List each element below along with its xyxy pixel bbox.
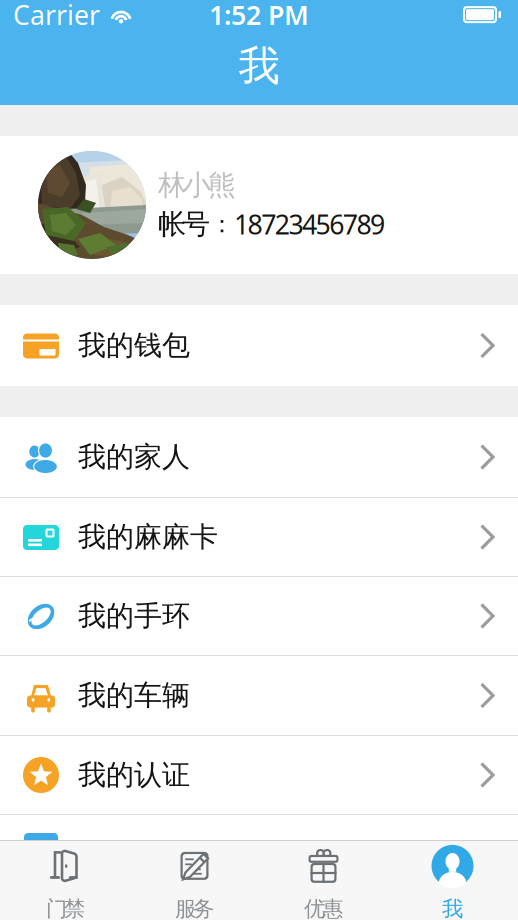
staticText: 优惠 bbox=[304, 896, 343, 920]
staticText: 我 bbox=[442, 896, 463, 920]
staticText: 门禁 bbox=[46, 896, 85, 920]
staticText: 我的车辆 bbox=[78, 678, 190, 713]
button[interactable]: 我的车辆 bbox=[0, 656, 518, 735]
button[interactable]: 我的钱包 bbox=[0, 305, 518, 386]
button[interactable]: 林小熊 bbox=[0, 136, 518, 274]
button[interactable]: 优惠 bbox=[259, 841, 388, 920]
staticText: 我的认证 bbox=[78, 758, 190, 792]
button[interactable]: 服务 bbox=[130, 841, 259, 920]
staticText: 我的手环 bbox=[78, 599, 190, 633]
staticText: 我的钱包 bbox=[78, 328, 190, 363]
staticText: 我的麻麻卡 bbox=[78, 520, 218, 554]
staticText: 1:52 PM bbox=[209, 0, 309, 32]
button[interactable]: 我的麻麻卡 bbox=[0, 498, 518, 576]
staticText: ： bbox=[210, 209, 234, 239]
staticText: 服务 bbox=[175, 896, 214, 920]
button[interactable]: 我的家人 bbox=[0, 417, 518, 497]
staticText: 我 bbox=[238, 41, 279, 91]
button[interactable]: 门禁 bbox=[1, 841, 130, 920]
button[interactable]: 我 bbox=[388, 841, 517, 920]
button[interactable]: 我的手环 bbox=[0, 577, 518, 655]
button[interactable]: 我的认证 bbox=[0, 736, 518, 814]
button[interactable]: 更多 bbox=[0, 815, 518, 841]
staticText: 帐号 bbox=[158, 207, 210, 241]
staticText: 18723456789 bbox=[234, 206, 385, 242]
staticText: 林小熊 bbox=[158, 168, 236, 202]
staticText: 我的家人 bbox=[78, 440, 190, 474]
staticText: Carrier bbox=[13, 0, 100, 32]
